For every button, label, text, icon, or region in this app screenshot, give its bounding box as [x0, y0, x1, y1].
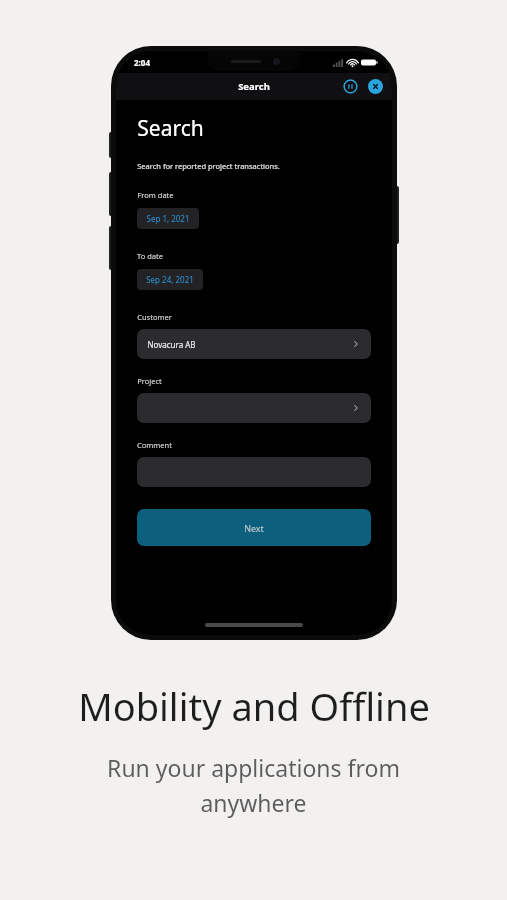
staticText: Search for reported project transactions… [137, 161, 280, 171]
button[interactable] [137, 393, 371, 423]
staticText: Project [137, 376, 162, 386]
staticText: Next [244, 522, 264, 534]
button[interactable]: Close [368, 79, 383, 94]
staticText: Search [238, 80, 270, 93]
button[interactable]: Novacura AB [137, 329, 371, 359]
staticText: Sep 1, 2021 [146, 213, 190, 224]
staticText: Sep 24, 2021 [146, 274, 194, 285]
button[interactable] [137, 457, 371, 487]
staticText: To date [137, 251, 163, 261]
staticText: From date [137, 190, 174, 200]
button[interactable]: Next [137, 509, 371, 546]
staticText: anywhere [200, 787, 307, 818]
staticText: 2:04 [134, 57, 150, 68]
staticText: Comment [137, 440, 172, 450]
staticText: Novacura AB [147, 339, 196, 350]
button[interactable]: Pause [343, 79, 358, 94]
staticText: Customer [137, 312, 172, 322]
staticText: Run your applications from [107, 752, 400, 783]
staticText: Search [137, 114, 204, 143]
button[interactable]: Sep 24, 2021 [137, 269, 203, 290]
staticText: Mobility and Offline [78, 680, 430, 732]
button[interactable]: Sep 1, 2021 [137, 208, 199, 229]
